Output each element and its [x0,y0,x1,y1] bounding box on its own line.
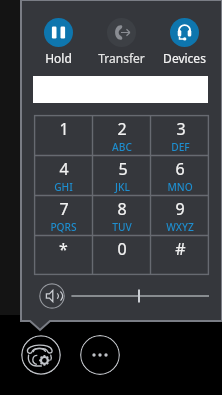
button[interactable]: 8 [93,195,151,235]
staticText: 4 [59,158,69,180]
staticText: Hold [45,50,72,66]
button[interactable]: Hold [34,18,82,66]
button[interactable]: 3 [151,115,209,155]
button[interactable]: Volume [69,284,211,308]
staticText: Devices [163,50,206,66]
staticText: Transfer [98,50,145,66]
button[interactable]: 7 [34,195,93,235]
staticText: JKL [115,180,130,194]
staticText: 5 [118,158,128,180]
staticText: 9 [175,198,185,220]
button[interactable]: Speaker [39,283,65,309]
staticText: * [59,238,68,260]
staticText: 6 [175,158,185,180]
staticText: 0 [117,238,127,260]
button[interactable]: 1 [34,115,93,155]
button[interactable]: 5 [93,155,151,195]
button[interactable]: 4 [34,155,93,195]
button[interactable]: # [151,235,209,275]
staticText: 7 [59,198,69,220]
button[interactable]: 6 [151,155,209,195]
staticText: 1 [59,118,69,140]
staticText: WXYZ [166,220,194,234]
staticText: 3 [176,118,186,140]
button[interactable]: 2 [93,115,151,155]
button[interactable]: Devices [160,18,208,66]
button[interactable]: Transfer [97,18,145,66]
staticText: # [175,238,186,260]
button[interactable]: 9 [151,195,209,235]
staticText: 2 [117,118,127,140]
staticText: TUV [112,220,132,234]
staticText: 8 [117,198,127,220]
staticText: GHI [54,180,73,194]
staticText: PQRS [50,220,77,234]
staticText: DEF [171,140,190,154]
staticText: ABC [112,140,132,154]
button[interactable]: 0 [93,235,151,275]
button[interactable]: * [34,235,93,275]
button[interactable]: More options [80,335,120,375]
staticText: MNO [167,180,193,194]
button[interactable]: Call settings [21,335,61,375]
